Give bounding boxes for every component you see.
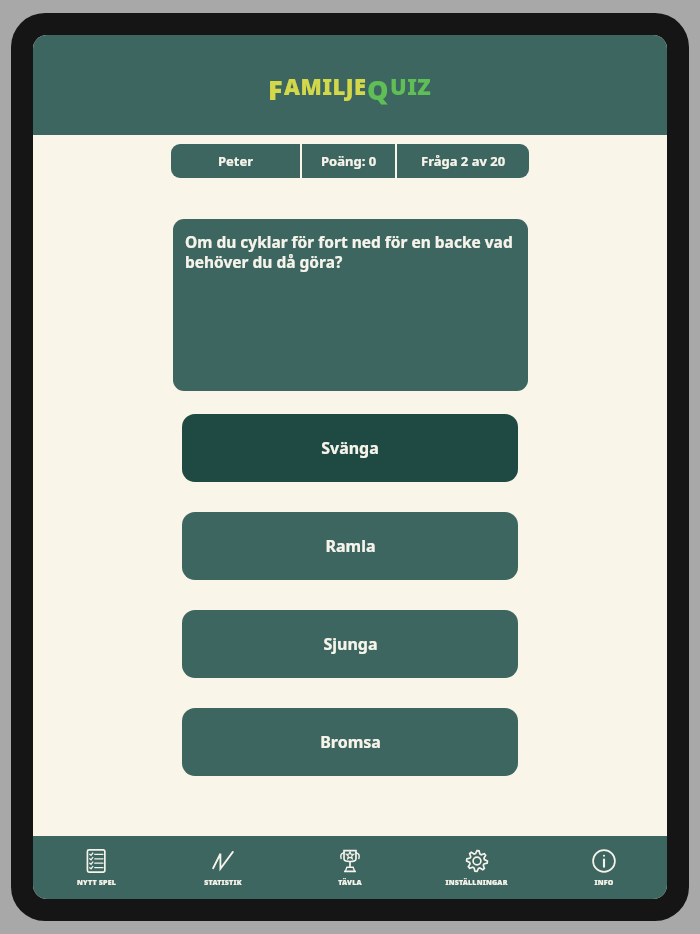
- staticText: Bromsa: [320, 731, 381, 753]
- staticText: Peter: [218, 152, 254, 170]
- button[interactable]: INSTÄLLNINGAR: [413, 848, 540, 888]
- staticText: AMILJE: [284, 71, 367, 101]
- staticText: Svänga: [321, 437, 379, 459]
- staticText: Poäng: 0: [321, 152, 377, 170]
- button[interactable]: Fråga 2 av 20: [397, 144, 529, 178]
- button[interactable]: Sjunga: [182, 610, 518, 678]
- button[interactable]: Poäng: 0: [302, 144, 395, 178]
- staticText: UIZ: [390, 71, 432, 101]
- button[interactable]: INFO: [540, 848, 667, 888]
- staticText: STATISTIK: [204, 878, 242, 888]
- staticText: Sjunga: [323, 633, 378, 655]
- button[interactable]: Bromsa: [182, 708, 518, 776]
- staticText: F: [268, 71, 284, 108]
- staticText: INFO: [594, 878, 614, 888]
- staticText: Ramla: [325, 535, 376, 557]
- button[interactable]: Peter: [171, 144, 300, 178]
- staticText: NYTT SPEL: [77, 878, 116, 888]
- button[interactable]: STATISTIK: [159, 848, 286, 888]
- staticText: Om du cyklar för fort ned för en backe v…: [185, 231, 516, 273]
- button[interactable]: TÄVLA: [286, 848, 413, 888]
- staticText: INSTÄLLNINGAR: [445, 878, 508, 888]
- staticText: Q: [367, 71, 390, 108]
- staticText: Fråga 2 av 20: [421, 152, 506, 170]
- button[interactable]: Svänga: [182, 414, 518, 482]
- button[interactable]: Ramla: [182, 512, 518, 580]
- staticText: TÄVLA: [338, 878, 362, 888]
- button[interactable]: NYTT SPEL: [33, 848, 159, 888]
